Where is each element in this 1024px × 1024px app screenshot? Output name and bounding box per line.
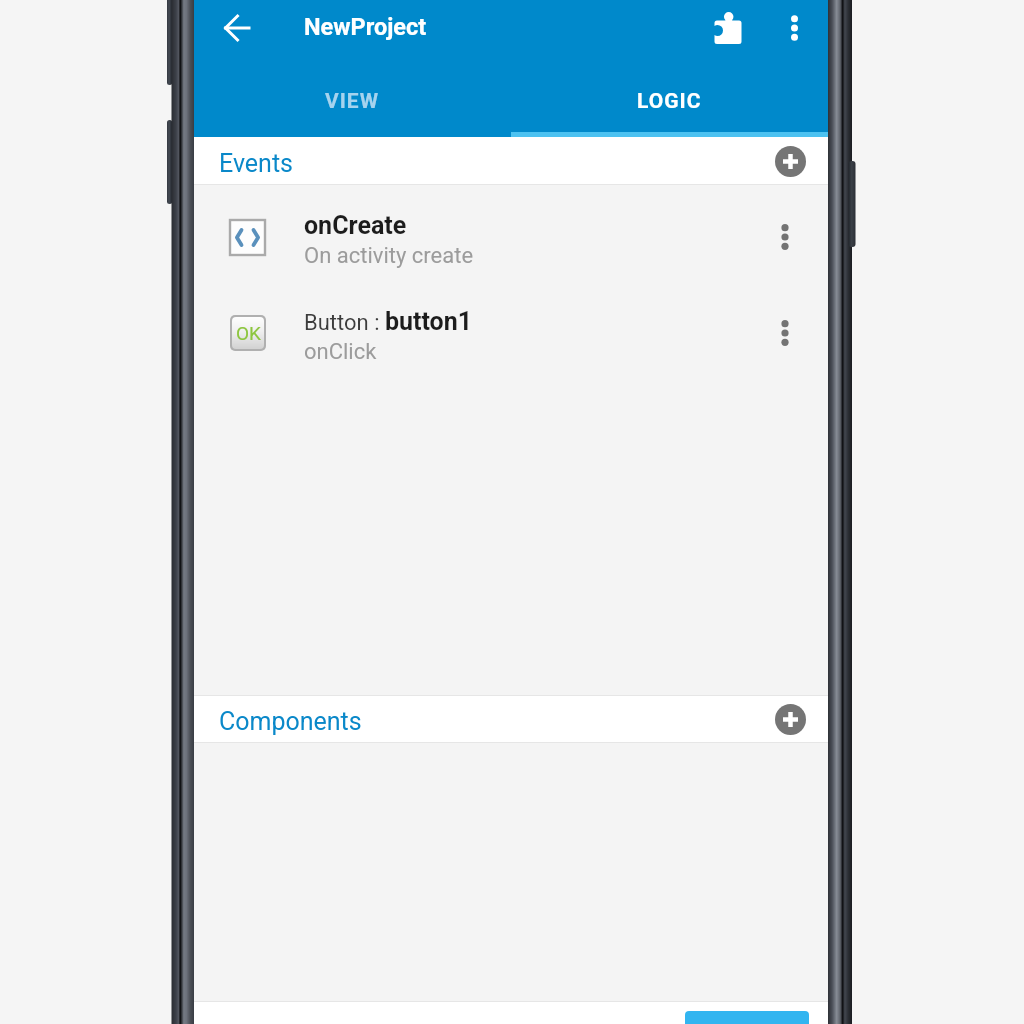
staticText: VIEW (325, 89, 380, 114)
button[interactable]: More options (769, 4, 817, 52)
staticText: onClick (304, 339, 377, 365)
staticText: Button : button1 (304, 307, 473, 336)
button[interactable]: VIEW (194, 63, 511, 137)
button[interactable] (685, 1011, 809, 1024)
staticText: NewProject (304, 13, 427, 41)
staticText: OK (236, 322, 261, 344)
button[interactable]: Add Events (775, 146, 806, 177)
button[interactable]: Extensions (704, 4, 752, 52)
staticText: On activity create (304, 243, 474, 269)
staticText: LOGIC (637, 89, 702, 114)
button[interactable]: Add Components (775, 704, 806, 735)
staticText: Components (219, 707, 362, 736)
button[interactable]: More (763, 215, 807, 259)
button[interactable]: Back (214, 4, 262, 52)
button[interactable]: More (763, 311, 807, 355)
button[interactable]: OK (194, 285, 828, 381)
button[interactable]: onCreate (194, 189, 828, 285)
staticText: Events (219, 149, 293, 178)
button[interactable]: LOGIC (511, 63, 828, 137)
staticText: onCreate (304, 211, 407, 240)
